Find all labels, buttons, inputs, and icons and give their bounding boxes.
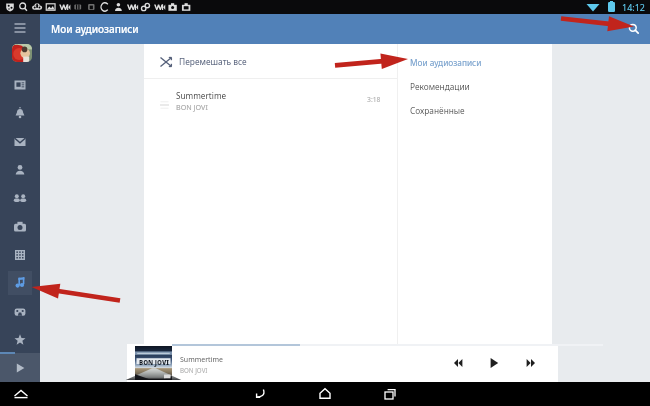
- button[interactable]: Music: [8, 271, 32, 295]
- staticText: Summertime: [176, 90, 227, 101]
- button[interactable]: Home: [313, 382, 337, 406]
- staticText: Сохранённые: [410, 105, 465, 116]
- button[interactable]: Friends: [8, 186, 32, 210]
- button[interactable]: Games: [8, 300, 32, 324]
- staticText: 3:18: [367, 95, 381, 104]
- staticText: Мои аудиозаписи: [51, 22, 139, 36]
- button[interactable]: Videos: [8, 356, 32, 380]
- staticText: Перемешать все: [179, 56, 247, 67]
- staticText: 14:12: [622, 1, 646, 13]
- button[interactable]: Previous: [446, 351, 470, 375]
- button[interactable]: Photos: [8, 215, 32, 239]
- button[interactable]: Перемешать все: [144, 45, 397, 78]
- staticText: Мои аудиозаписи: [410, 57, 482, 68]
- button[interactable]: Notifications: [8, 101, 32, 125]
- button[interactable]: Messages: [8, 130, 32, 154]
- staticText: BON JOVI: [139, 358, 169, 366]
- button[interactable]: Summertime: [144, 79, 397, 117]
- button[interactable]: Next: [519, 351, 543, 375]
- button[interactable]: Сохранённые: [398, 98, 551, 122]
- staticText: Рекомендации: [410, 81, 470, 92]
- button[interactable]: Recent apps: [378, 382, 402, 406]
- button[interactable]: Open navigation menu: [8, 16, 32, 40]
- button[interactable]: Bookmarks: [8, 328, 32, 352]
- button[interactable]: Profile: [12, 44, 32, 62]
- button[interactable]: Мои аудиозаписи: [398, 50, 551, 74]
- button[interactable]: News: [8, 73, 32, 97]
- staticText: Summertime: [180, 355, 223, 365]
- button[interactable]: Communities: [8, 243, 32, 267]
- button[interactable]: Profile: [8, 158, 32, 182]
- button[interactable]: Play: [482, 351, 506, 375]
- button[interactable]: Search: [624, 19, 644, 39]
- staticText: BON JOVI: [176, 102, 208, 112]
- staticText: BON JOVI: [180, 366, 208, 374]
- button[interactable]: Рекомендации: [398, 74, 551, 98]
- button[interactable]: Hide navigation bar: [9, 382, 33, 406]
- button[interactable]: Back: [248, 382, 272, 406]
